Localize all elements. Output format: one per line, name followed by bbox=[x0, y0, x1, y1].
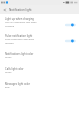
button[interactable]: Notifications light color bbox=[0, 48, 79, 63]
staticText: Turn on notification light when charging bbox=[5, 21, 40, 27]
button[interactable]: Toggle bbox=[63, 20, 76, 30]
staticText: Blue bbox=[5, 86, 10, 89]
staticText: Notification light bbox=[9, 8, 32, 12]
staticText: Pulse notification light bbox=[5, 34, 33, 38]
staticText: Notifications light color bbox=[5, 52, 34, 56]
staticText: Pulse notification light when received bbox=[5, 38, 35, 44]
button[interactable]: Back bbox=[0, 5, 9, 14]
button[interactable]: Calls light color bbox=[0, 63, 79, 78]
button[interactable]: Pulse notification light bbox=[0, 30, 79, 48]
staticText: Green bbox=[5, 56, 12, 59]
button[interactable]: Messages light color bbox=[0, 78, 79, 93]
button[interactable]: Toggle bbox=[63, 36, 76, 46]
button[interactable]: Light up when charging bbox=[0, 14, 79, 30]
staticText: Light up when charging bbox=[5, 17, 34, 21]
staticText: Calls light color bbox=[5, 67, 24, 71]
staticText: Messages light color bbox=[5, 82, 31, 86]
staticText: Green bbox=[5, 71, 12, 74]
